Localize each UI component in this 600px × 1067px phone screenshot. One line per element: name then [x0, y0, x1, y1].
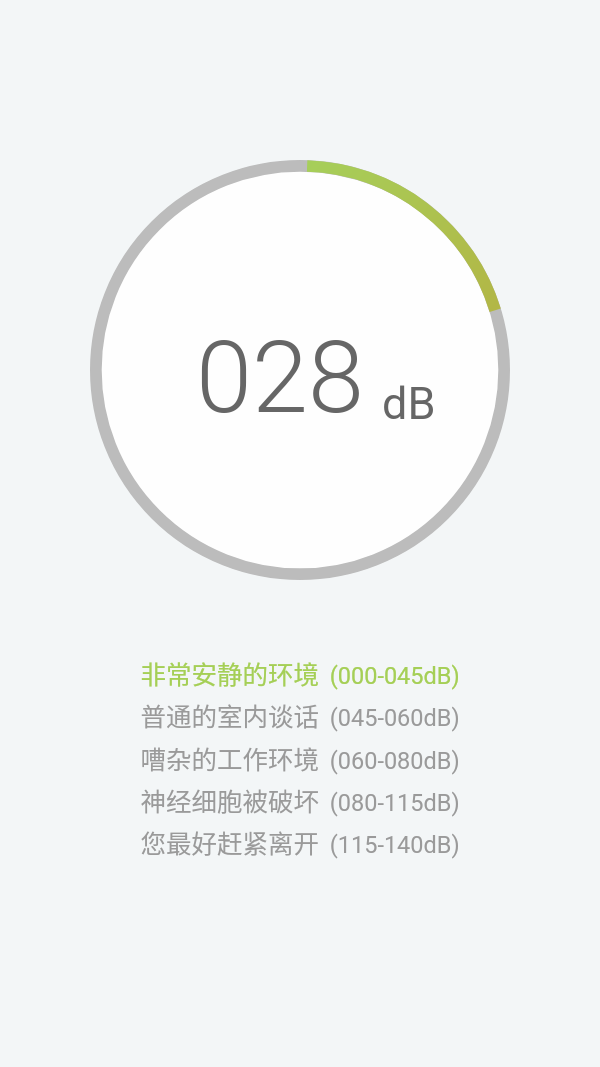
- button[interactable]: 您最好赶紧离开 (115-140dB): [0, 820, 600, 862]
- staticText: 普通的室内谈话 (045-060dB): [140, 696, 460, 733]
- staticText: 神经细胞被破坏 (080-115dB): [140, 781, 460, 818]
- button[interactable]: 嘈杂的工作环境 (060-080dB): [0, 736, 600, 778]
- staticText: 028: [196, 318, 365, 436]
- button[interactable]: Sound level gauge, 28 decibels: [90, 160, 510, 580]
- button[interactable]: 非常安静的环境 (000-045dB): [0, 651, 600, 693]
- staticText: 您最好赶紧离开 (115-140dB): [140, 823, 460, 860]
- staticText: 嘈杂的工作环境 (060-080dB): [140, 739, 460, 776]
- staticText: dB: [382, 377, 436, 430]
- button[interactable]: 普通的室内谈话 (045-060dB): [0, 693, 600, 735]
- button[interactable]: 神经细胞被破坏 (080-115dB): [0, 778, 600, 820]
- staticText: 非常安静的环境 (000-045dB): [140, 654, 460, 691]
